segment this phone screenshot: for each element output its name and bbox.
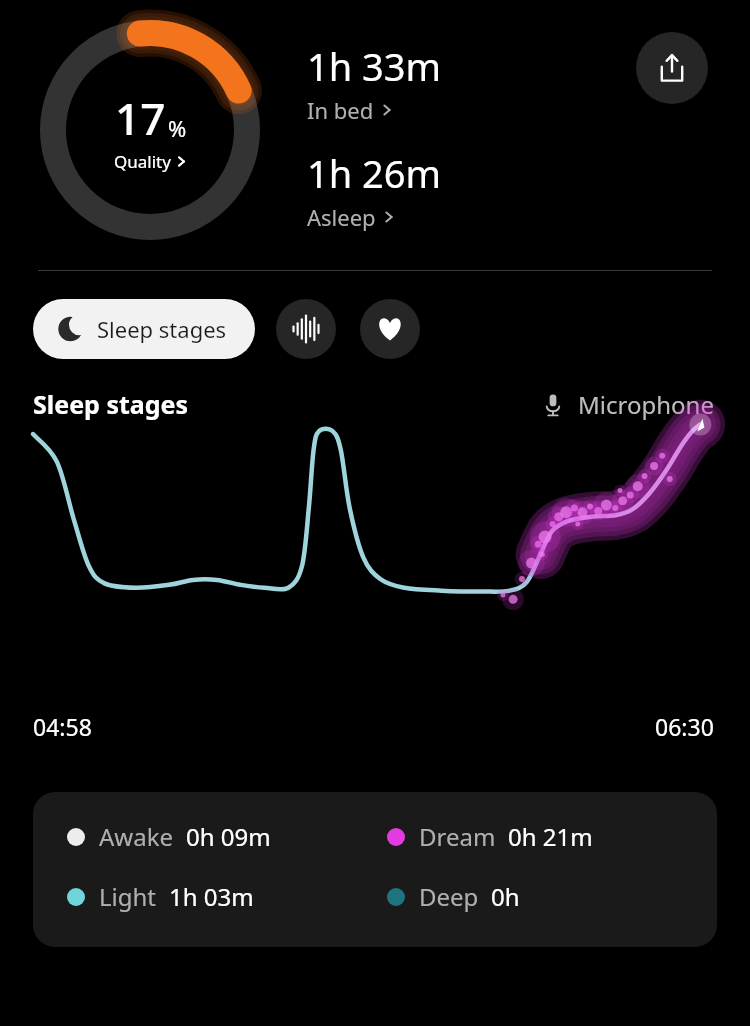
staticText: Sleep stages [33,387,189,421]
staticText: Sleep stages [97,314,227,344]
button[interactable]: 17 [40,20,260,240]
staticText: 0h 09m [186,820,271,853]
staticText: % [168,113,187,143]
staticText: 06:30 [655,711,714,742]
staticText: In bed [307,95,374,125]
button[interactable]: 1h 26m [307,147,442,232]
staticText: Awake [99,820,174,853]
button[interactable]: Awake [33,792,717,947]
staticText: Asleep [307,202,376,232]
staticText: Deep [419,880,479,913]
staticText: Light [99,880,157,913]
button[interactable]: Sounds [276,299,336,359]
staticText: Microphone [578,388,714,421]
button[interactable]: Share [636,32,708,104]
button[interactable]: Microphone [540,388,714,421]
button[interactable]: 1h 33m [307,40,442,125]
staticText: 1h 03m [169,880,254,913]
staticText: 0h 21m [508,820,593,853]
staticText: Dream [419,820,496,853]
staticText: 1h 33m [307,40,442,92]
staticText: 0h [491,880,520,913]
staticText: 04:58 [33,711,92,742]
button[interactable]: Sleep stages [33,299,255,359]
staticText: Quality [114,150,171,173]
button[interactable]: Heart rate [360,299,420,359]
staticText: 17 [115,88,166,148]
staticText: 1h 26m [307,147,442,199]
